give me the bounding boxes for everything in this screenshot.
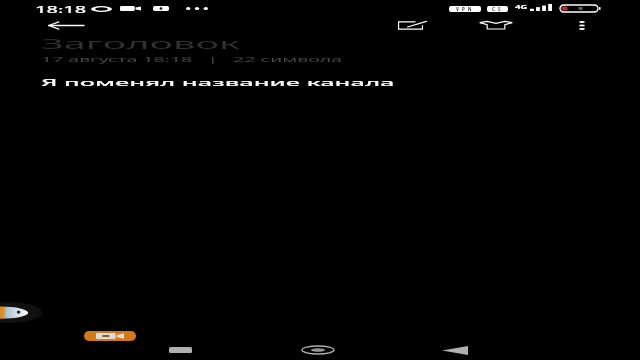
button[interactable]: More options (567, 15, 597, 35)
staticText: 18:18 (35, 4, 87, 15)
staticText: VPN (456, 6, 475, 12)
button[interactable]: Note body (0, 0, 640, 360)
button[interactable]: Back (435, 340, 475, 360)
button[interactable]: Archive (476, 15, 516, 35)
button[interactable]: Edit (392, 15, 432, 35)
staticText: Заголовок (41, 33, 242, 53)
button[interactable]: Home (298, 340, 338, 360)
staticText: Я поменял название канала (41, 76, 396, 88)
staticText: 17 августа 18:18 | 22 символа (41, 55, 344, 65)
button[interactable]: Floating bubble (0, 302, 42, 323)
button[interactable]: Screen recorder (84, 331, 136, 341)
button[interactable]: Back (42, 16, 90, 34)
staticText: 4G (515, 4, 528, 11)
staticText: CS (492, 6, 504, 12)
button[interactable]: Recents (160, 340, 200, 360)
